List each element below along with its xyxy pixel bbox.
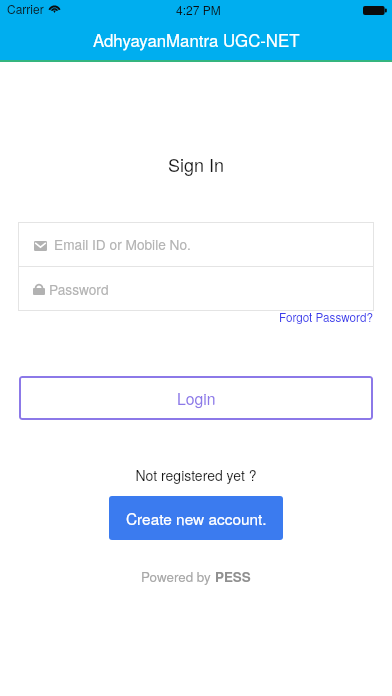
staticText: Powered by [141, 567, 215, 586]
button[interactable]: Email ID or Mobile No. [18, 222, 374, 266]
button[interactable]: Login [19, 376, 373, 420]
button[interactable]: Forgot Password? [279, 309, 373, 326]
staticText: Password [49, 279, 109, 299]
staticText: Email ID or Mobile No. [54, 234, 191, 254]
staticText: Login [177, 387, 216, 410]
staticText: PESS [215, 567, 251, 586]
staticText: Sign In [0, 151, 392, 177]
staticText: 4:27 PM [176, 1, 221, 18]
other: Battery full [363, 6, 387, 15]
staticText: Not registered yet ? [0, 465, 392, 485]
staticText: AdhyayanMantra UGC-NET [93, 28, 300, 52]
other: Wi-Fi signal [48, 3, 61, 12]
staticText: Carrier [7, 0, 44, 17]
button[interactable]: Password [18, 267, 374, 311]
staticText: Create new account. [126, 507, 267, 529]
button[interactable]: Create new account. [109, 496, 283, 540]
